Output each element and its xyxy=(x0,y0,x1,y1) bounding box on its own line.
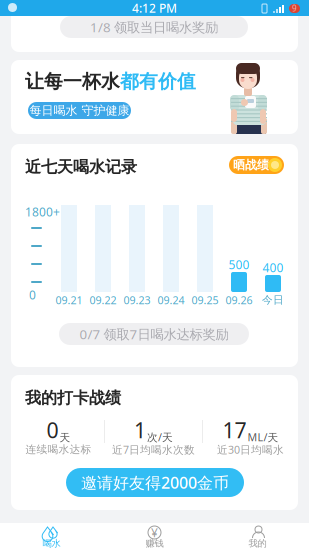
staticText: 4:12 PM xyxy=(132,0,177,16)
button[interactable]: 1/8 领取当日喝水奖励 xyxy=(60,16,248,38)
staticText: 09.24 xyxy=(157,293,184,307)
staticText: 500 xyxy=(228,256,249,272)
staticText: ¥ xyxy=(151,524,158,540)
staticText: 次/天 xyxy=(147,430,173,444)
staticText: 09.22 xyxy=(89,293,116,307)
staticText: 近七天喝水记录 xyxy=(25,157,137,177)
staticText: 每日喝水 守护健康 xyxy=(29,103,129,118)
staticText: 近7日均喝水次数 xyxy=(112,442,195,457)
staticText: 09.21 xyxy=(55,293,82,307)
staticText: 赚钱 xyxy=(145,538,163,549)
button[interactable]: 晒战绩 xyxy=(229,156,284,174)
button[interactable]: ¥ xyxy=(103,523,206,550)
staticText: 我的打卡战绩 xyxy=(25,388,121,408)
staticText: 0 xyxy=(29,287,36,303)
staticText: 1/8 领取当日喝水奖励 xyxy=(90,18,218,36)
staticText: 1 xyxy=(134,416,146,444)
staticText: 晒战绩 xyxy=(233,158,269,172)
button[interactable]: 喝水 xyxy=(0,523,103,550)
staticText: 1800+ xyxy=(25,204,60,220)
staticText: 09.23 xyxy=(123,293,150,307)
staticText: 我的 xyxy=(248,538,266,549)
staticText: 0/7 领取7日喝水达标奖励 xyxy=(79,325,228,343)
staticText: 09.25 xyxy=(191,293,218,307)
button[interactable]: 邀请好友得2000金币 xyxy=(66,468,244,497)
staticText: 09.26 xyxy=(225,293,252,307)
staticText: 都有价值 xyxy=(120,70,196,93)
staticText: 让每一杯水 xyxy=(25,70,120,93)
staticText: 邀请好友得2000金币 xyxy=(81,472,229,493)
staticText: 今日 xyxy=(262,293,284,306)
staticText: 0 xyxy=(46,416,58,444)
staticText: 9 xyxy=(292,3,297,14)
staticText: 喝水 xyxy=(42,538,60,549)
staticText: 近30日均喝水 xyxy=(217,442,284,457)
staticText: 400 xyxy=(262,259,283,275)
staticText: ML/天 xyxy=(247,430,278,444)
button[interactable]: 我的 xyxy=(206,523,309,550)
staticText: 天 xyxy=(59,431,70,444)
button[interactable]: 0/7 领取7日喝水达标奖励 xyxy=(59,323,249,345)
staticText: 连续喝水达标 xyxy=(25,443,91,456)
staticText: 17 xyxy=(222,416,246,444)
